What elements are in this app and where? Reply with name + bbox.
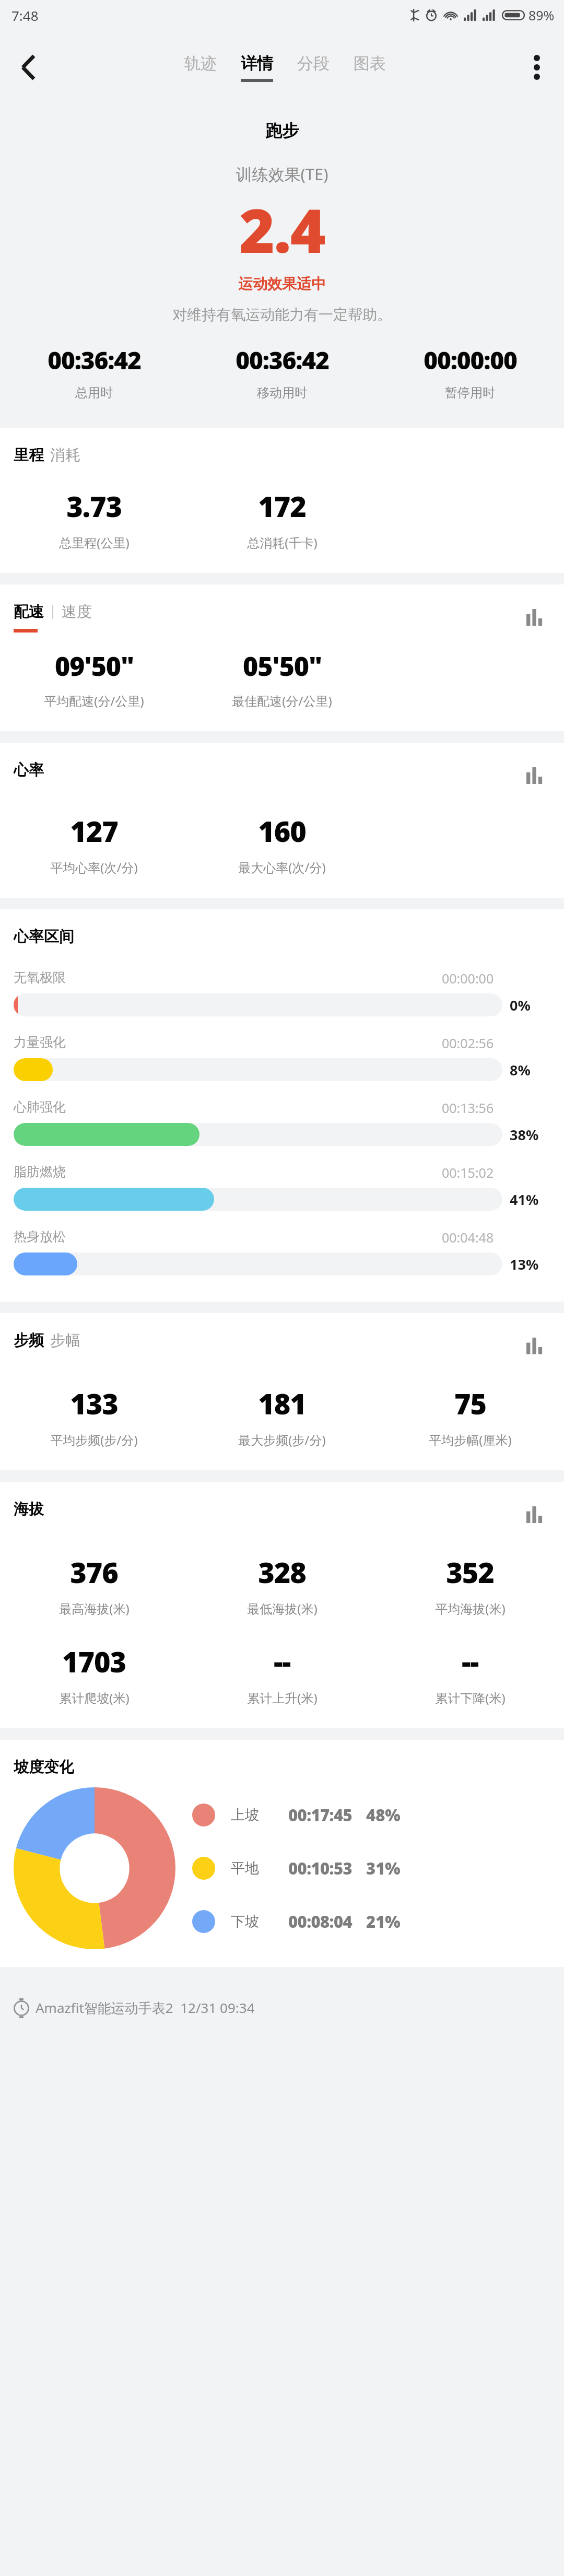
staticText: Amazfit智能运动手表2 12/31 09:34: [36, 1998, 255, 2017]
staticText: 172: [258, 487, 306, 525]
staticText: 7:48: [11, 6, 39, 25]
staticText: 2.4: [0, 188, 564, 271]
button[interactable]: 里程: [14, 446, 44, 465]
button[interactable]: 步频: [14, 1331, 44, 1350]
staticText: 脂肪燃烧: [14, 1164, 66, 1180]
button[interactable]: 下坡: [192, 1910, 550, 1933]
staticText: 00:00:00: [424, 344, 517, 377]
staticText: 最高海拔(米): [59, 1600, 130, 1617]
button[interactable]: View chart: [519, 1331, 549, 1361]
staticText: 速度: [62, 602, 92, 622]
staticText: 8%: [510, 1060, 531, 1080]
staticText: 41%: [510, 1190, 539, 1209]
staticText: 消耗: [50, 446, 80, 465]
button[interactable]: 心率: [14, 760, 44, 780]
staticText: 上坡: [231, 1806, 279, 1824]
staticText: --: [274, 1642, 290, 1681]
staticText: 00:04:48: [442, 1228, 494, 1246]
staticText: 00:08:04: [288, 1911, 352, 1933]
staticText: 1703: [62, 1642, 126, 1681]
staticText: 坡度变化: [14, 1758, 74, 1777]
button[interactable]: 图表: [350, 50, 389, 85]
button[interactable]: 消耗: [50, 446, 80, 465]
button[interactable]: 速度: [62, 602, 92, 622]
button[interactable]: 上坡: [192, 1804, 550, 1826]
button[interactable]: More options: [518, 49, 556, 86]
staticText: 移动用时: [257, 385, 307, 401]
staticText: 累计下降(米): [435, 1689, 506, 1706]
button[interactable]: 坡度变化: [14, 1758, 74, 1777]
button[interactable]: 轨迹: [181, 50, 220, 85]
staticText: 轨迹: [184, 53, 217, 74]
staticText: 最大心率(次/分): [238, 859, 326, 876]
button[interactable]: View chart: [519, 602, 549, 633]
staticText: 平地: [231, 1859, 279, 1877]
staticText: 暂停用时: [445, 385, 495, 401]
staticText: 配速: [14, 602, 44, 622]
staticText: 13%: [510, 1255, 539, 1274]
staticText: 最佳配速(分/公里): [232, 692, 332, 709]
staticText: 0%: [510, 996, 531, 1015]
staticText: 热身放松: [14, 1228, 66, 1245]
staticText: 75: [454, 1384, 486, 1423]
staticText: 总里程(公里): [59, 534, 130, 551]
button[interactable]: 平地: [192, 1857, 550, 1880]
staticText: 步幅: [50, 1331, 80, 1350]
button[interactable]: 分段: [294, 50, 333, 85]
staticText: 00:15:02: [442, 1164, 494, 1181]
staticText: 心率: [14, 760, 44, 780]
staticText: 平均海拔(米): [435, 1600, 506, 1617]
button[interactable]: 步幅: [50, 1331, 80, 1350]
staticText: 31%: [366, 1857, 401, 1879]
staticText: 最大步频(步/分): [238, 1431, 326, 1448]
staticText: 00:36:42: [48, 344, 141, 377]
staticText: 运动效果适中: [0, 275, 564, 293]
staticText: 00:02:56: [442, 1034, 494, 1052]
staticText: 总用时: [75, 385, 113, 401]
staticText: 09'50": [55, 648, 134, 684]
staticText: 心率区间: [14, 927, 74, 946]
staticText: 00:36:42: [236, 344, 329, 377]
staticText: 89%: [528, 6, 555, 24]
staticText: 00:13:56: [442, 1099, 494, 1117]
staticText: 3.73: [66, 487, 122, 525]
staticText: 心肺强化: [14, 1099, 66, 1115]
staticText: 平均步幅(厘米): [429, 1431, 512, 1448]
staticText: 平均步频(步/分): [50, 1431, 138, 1448]
staticText: 160: [258, 812, 306, 850]
staticText: 181: [258, 1384, 306, 1423]
staticText: 图表: [354, 53, 386, 74]
staticText: 下坡: [231, 1913, 279, 1930]
staticText: 平均心率(次/分): [50, 859, 138, 876]
button[interactable]: View chart: [519, 760, 549, 791]
button[interactable]: 详情: [238, 50, 276, 85]
staticText: 训练效果(TE): [0, 163, 564, 185]
staticText: 对维持有氧运动能力有一定帮助。: [0, 306, 564, 324]
button[interactable]: 配速: [14, 602, 44, 622]
staticText: 详情: [241, 53, 273, 74]
staticText: 05'50": [243, 648, 322, 684]
staticText: 跑步: [0, 120, 564, 141]
button[interactable]: View chart: [519, 1500, 549, 1530]
staticText: 00:00:00: [442, 969, 494, 987]
staticText: 步频: [14, 1331, 44, 1350]
button[interactable]: 海拔: [14, 1500, 44, 1519]
staticText: 21%: [366, 1911, 401, 1933]
staticText: 38%: [510, 1125, 539, 1144]
staticText: 00:10:53: [288, 1857, 352, 1879]
staticText: 累计上升(米): [247, 1689, 318, 1706]
staticText: 133: [70, 1384, 118, 1423]
staticText: 里程: [14, 446, 44, 465]
staticText: 127: [70, 812, 118, 850]
staticText: --: [462, 1642, 478, 1681]
staticText: 总消耗(千卡): [247, 534, 318, 551]
staticText: 48%: [366, 1804, 401, 1826]
staticText: 累计爬坡(米): [59, 1689, 130, 1706]
staticText: 00:17:45: [288, 1804, 352, 1826]
staticText: 352: [446, 1553, 494, 1591]
button[interactable]: 心率区间: [14, 927, 74, 946]
staticText: 力量强化: [14, 1034, 66, 1050]
button[interactable]: Back: [7, 46, 49, 88]
staticText: 328: [258, 1553, 306, 1591]
staticText: 无氧极限: [14, 969, 66, 986]
